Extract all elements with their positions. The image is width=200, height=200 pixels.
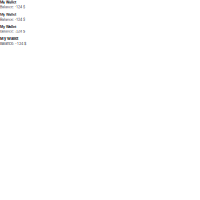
staticText: Balance: -124 $ bbox=[0, 17, 25, 22]
staticText: Balance: -124 $ bbox=[0, 29, 25, 33]
staticText: Balance: -124 $ bbox=[0, 41, 26, 46]
staticText: My Wallet bbox=[0, 12, 16, 17]
staticText: My Wallet bbox=[0, 36, 18, 41]
staticText: My Wallet bbox=[0, 25, 16, 29]
staticText: Balance: -124 $ bbox=[0, 5, 25, 9]
staticText: My Wallet bbox=[0, 0, 16, 4]
